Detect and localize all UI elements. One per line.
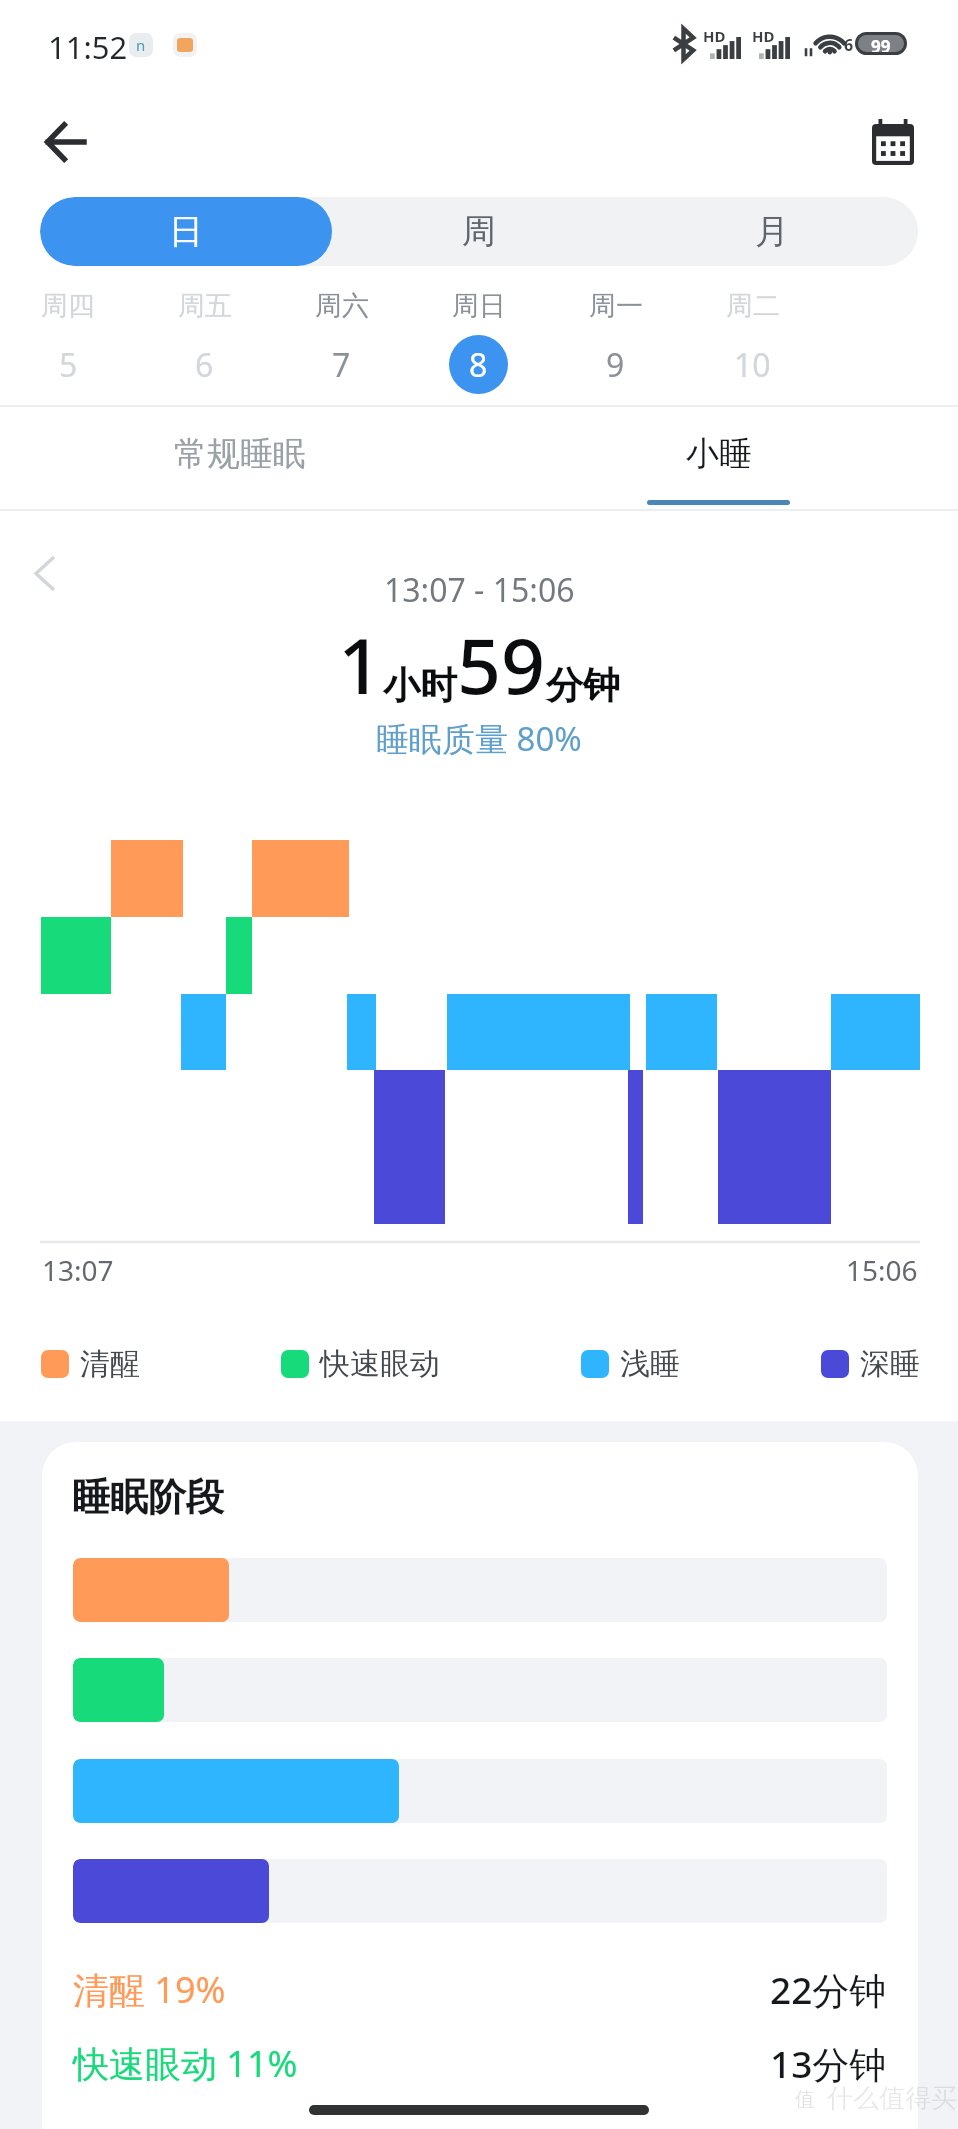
staticText: 值 [795, 2087, 815, 2112]
button[interactable]: 小睡 [479, 406, 958, 510]
staticText: 13:07 [42, 1251, 114, 1289]
button[interactable]: 清醒 [41, 1345, 140, 1383]
staticText: 深睡 [860, 1345, 920, 1383]
button[interactable]: Back [23, 100, 107, 184]
staticText: 常规睡眠 [174, 433, 306, 475]
staticText: 7 [332, 343, 351, 387]
staticText: 6 [844, 34, 854, 56]
staticText: 清醒 19% [73, 1965, 226, 2014]
staticText: 快速眼动 11% [73, 2039, 298, 2088]
staticText: 13:07 - 15:06 [384, 568, 575, 612]
staticText: 日 [169, 210, 203, 253]
staticText: 99 [871, 35, 891, 52]
staticText: 1 [338, 612, 383, 717]
staticText: 11:52 [48, 26, 128, 68]
staticText: 小时 [383, 662, 457, 709]
button[interactable]: 浅睡 [581, 1345, 680, 1383]
staticText: 小睡 [686, 433, 752, 475]
button[interactable]: 周四 [0, 272, 136, 402]
button[interactable]: 周日 [410, 272, 547, 402]
staticText: 什么值得买 [827, 2082, 957, 2115]
button[interactable]: Calendar [851, 100, 935, 184]
staticText: 分钟 [546, 662, 620, 709]
staticText: 周六 [315, 289, 369, 323]
button[interactable]: 周 [332, 197, 625, 266]
button[interactable]: 周二 [684, 272, 821, 402]
staticText: 周二 [726, 289, 780, 323]
staticText: 睡眠阶段 [72, 1473, 224, 1521]
staticText: 13分钟 [770, 2038, 887, 2089]
button[interactable]: 常规睡眠 [0, 406, 479, 510]
button[interactable]: 周六 [273, 272, 410, 402]
staticText: 浅睡 [620, 1345, 680, 1383]
staticText: 59 [457, 612, 546, 717]
staticText: HD [703, 26, 726, 46]
button[interactable]: 周五 [136, 272, 273, 402]
staticText: 8 [469, 343, 488, 387]
staticText: 10 [734, 343, 771, 387]
staticText: 15:06 [846, 1251, 918, 1289]
button[interactable]: 月 [625, 197, 918, 266]
staticText: 清醒 [80, 1345, 140, 1383]
button[interactable]: Previous [18, 533, 72, 613]
staticText: 周 [462, 210, 496, 253]
staticText: HD [752, 26, 775, 46]
staticText: 22分钟 [770, 1964, 887, 2015]
button[interactable]: 快速眼动 [281, 1345, 440, 1383]
staticText: 周四 [41, 289, 95, 323]
staticText: 周日 [452, 289, 506, 323]
staticText: 9 [606, 343, 625, 387]
staticText: 5 [59, 343, 78, 387]
staticText: 快速眼动 [320, 1345, 440, 1383]
staticText: 周五 [178, 289, 232, 323]
button[interactable]: 周一 [547, 272, 684, 402]
staticText: 周一 [589, 289, 643, 323]
staticText: n [136, 35, 146, 55]
staticText: 6 [195, 343, 214, 387]
staticText: 睡眠质量 80% [376, 716, 582, 761]
button[interactable]: 日 [40, 197, 332, 266]
button[interactable]: 深睡 [821, 1345, 920, 1383]
staticText: 月 [755, 210, 789, 253]
